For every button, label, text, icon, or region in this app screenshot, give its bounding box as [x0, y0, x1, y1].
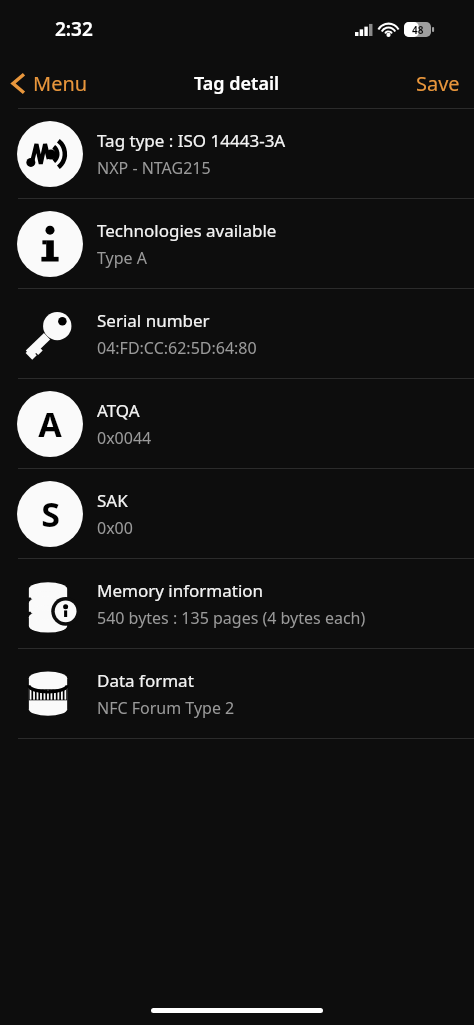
staticText: 0x0044: [97, 427, 152, 449]
other: Data format: [17, 661, 83, 727]
button[interactable]: A: [0, 379, 474, 468]
staticText: Type A: [97, 247, 147, 269]
staticText: Technologies available: [97, 219, 277, 242]
staticText: A: [38, 401, 62, 447]
button[interactable]: Save: [402, 58, 474, 108]
button[interactable]: NFC tag type: [0, 109, 474, 198]
staticText: Menu: [33, 70, 88, 97]
button[interactable]: Serial number: [0, 289, 474, 378]
staticText: 2:32: [55, 16, 93, 42]
other: Technologies information: [17, 211, 83, 277]
staticText: Data format: [97, 669, 194, 692]
staticText: Tag type : ISO 14443-3A: [97, 129, 286, 152]
staticText: Serial number: [97, 309, 210, 332]
staticText: NXP - NTAG215: [97, 157, 211, 179]
button[interactable]: Technologies information: [0, 199, 474, 288]
other: Serial number: [17, 301, 83, 367]
staticText: S: [41, 491, 60, 537]
staticText: 04:FD:CC:62:5D:64:80: [97, 337, 257, 359]
staticText: SAK: [97, 489, 128, 512]
staticText: Save: [416, 70, 460, 97]
button[interactable]: Menu: [0, 58, 100, 108]
other: NFC tag type: [17, 121, 83, 187]
staticText: NFC Forum Type 2: [97, 697, 235, 719]
staticText: 48: [412, 23, 424, 37]
button[interactable]: Memory information: [0, 559, 474, 648]
button[interactable]: Data format: [0, 649, 474, 738]
staticText: 0x00: [97, 517, 133, 539]
button[interactable]: S: [0, 469, 474, 558]
staticText: 540 bytes : 135 pages (4 bytes each): [97, 607, 366, 629]
other: Memory information: [17, 571, 83, 637]
staticText: ATQA: [97, 399, 140, 422]
staticText: Tag detail: [194, 71, 280, 96]
staticText: Memory information: [97, 579, 264, 602]
